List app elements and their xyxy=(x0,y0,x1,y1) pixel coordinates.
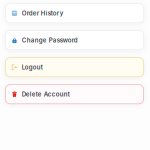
staticText: Delete Account xyxy=(22,90,70,98)
button[interactable]: Logout xyxy=(5,57,144,77)
button[interactable]: Change Password xyxy=(5,30,144,50)
staticText: Logout xyxy=(22,63,43,71)
staticText: Change Password xyxy=(22,36,78,44)
staticText: Order History xyxy=(22,9,64,17)
button[interactable]: Delete Account xyxy=(5,84,144,104)
button[interactable]: Order History xyxy=(5,3,144,23)
